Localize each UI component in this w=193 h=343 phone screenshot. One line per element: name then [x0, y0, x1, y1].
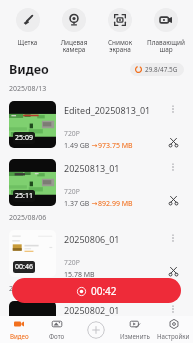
staticText: 01:12 [15, 333, 33, 343]
button[interactable]: More options [166, 102, 180, 116]
staticText: 2025/08/13 [9, 84, 47, 94]
button[interactable]: Изменить [115, 316, 154, 343]
staticText: 720P [64, 187, 80, 196]
staticText: 00:42 [91, 284, 117, 298]
staticText: → [90, 141, 98, 151]
button[interactable]: Видео [0, 316, 38, 343]
button[interactable]: More options [166, 160, 180, 174]
staticText: Изменить [120, 332, 150, 340]
staticText: 25:11 [15, 191, 33, 201]
staticText: → [90, 199, 98, 209]
staticText: Edited_20250813_01 [64, 104, 151, 116]
staticText: Щетка [4, 38, 51, 47]
staticText: Видео [9, 61, 49, 78]
button[interactable]: 25:11 [0, 153, 193, 211]
button[interactable]: Плавающий шар [143, 0, 189, 55]
staticText: 973.75 MB [98, 141, 133, 151]
button[interactable]: Trim video [166, 264, 180, 278]
button[interactable]: Снимок экрана [97, 0, 143, 55]
button[interactable]: More options [166, 231, 180, 245]
button[interactable]: 00:42 [12, 278, 181, 303]
button[interactable]: Лицевая камера [51, 0, 97, 55]
button[interactable]: 01:12 [0, 295, 193, 343]
staticText: 00:46 [15, 262, 33, 272]
staticText: Фото [49, 332, 65, 340]
button[interactable]: Настройки [154, 316, 193, 343]
staticText: Плавающий шар [143, 38, 189, 54]
button[interactable]: Щетка [4, 0, 51, 55]
staticText: 29.8/47.5G [145, 65, 178, 74]
button[interactable]: 00:46 [0, 224, 193, 282]
staticText: 20250802_01 [64, 304, 120, 316]
button[interactable]: New recording [87, 321, 105, 339]
staticText: 2025/08/06 [9, 213, 47, 223]
button[interactable]: Trim video [166, 193, 180, 207]
staticText: Лицевая камера [51, 38, 97, 54]
staticText: 1.49 GB [64, 141, 90, 151]
button[interactable]: Trim video [166, 335, 180, 343]
button[interactable]: 25:09 [0, 95, 193, 153]
staticText: 20250813_01 [64, 162, 120, 174]
staticText: 892.99 MB [98, 199, 133, 209]
staticText: Видео [10, 332, 29, 340]
staticText: 20250806_01 [64, 233, 120, 245]
staticText: 25:09 [15, 133, 33, 143]
staticText: 720P [64, 258, 80, 267]
staticText: 15.78 MB [64, 270, 95, 280]
button[interactable]: 29.8/47.5G [130, 63, 184, 76]
staticText: 1.37 GB [64, 199, 90, 209]
staticText: Настройки [157, 332, 190, 340]
button[interactable]: More options [166, 302, 180, 316]
button[interactable]: Trim video [166, 135, 180, 149]
button[interactable]: Фото [38, 316, 76, 343]
staticText: Снимок экрана [97, 38, 143, 54]
staticText: 720P [64, 129, 80, 138]
staticText: 2025/08/02 [9, 284, 47, 294]
